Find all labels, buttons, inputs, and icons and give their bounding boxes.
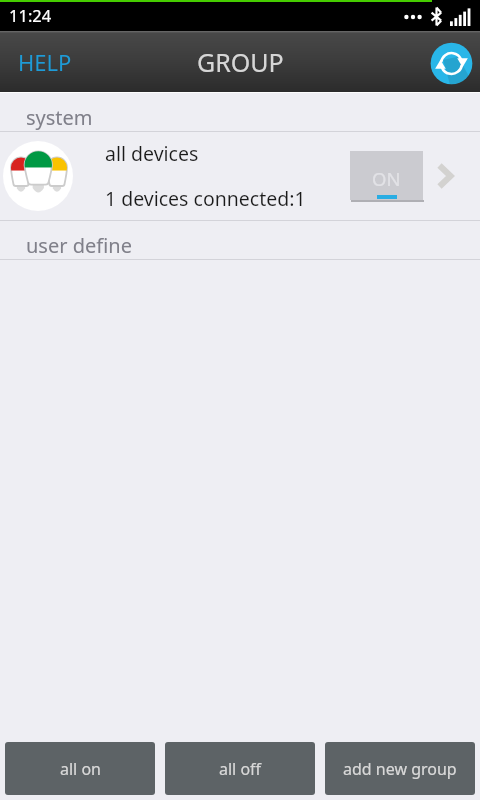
button[interactable]: Refresh [428, 40, 474, 86]
staticText: GROUP [197, 45, 284, 79]
staticText: 1 devices connected:1 [105, 185, 306, 212]
staticText: all on [60, 758, 101, 780]
staticText: ON [372, 166, 401, 191]
staticText: 11:24 [9, 4, 52, 26]
staticText: system [26, 104, 93, 131]
staticText: add new group [343, 758, 457, 780]
staticText: HELP [18, 47, 72, 77]
button[interactable]: all off [165, 742, 315, 795]
button[interactable]: all on [5, 742, 155, 795]
staticText: all devices [105, 140, 199, 167]
button[interactable]: HELP [0, 33, 90, 91]
button[interactable]: all devices [0, 132, 480, 220]
staticText: user define [26, 232, 132, 259]
button[interactable]: ON [350, 151, 423, 200]
button[interactable]: add new group [325, 742, 475, 795]
staticText: all off [219, 758, 262, 780]
